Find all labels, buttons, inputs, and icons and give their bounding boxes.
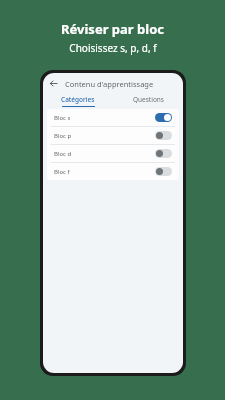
staticText: Bloc p (54, 132, 72, 140)
button[interactable]: Catégories (43, 94, 113, 107)
button[interactable]: Bloc d (47, 145, 179, 162)
button[interactable]: Retour (47, 77, 60, 90)
staticText: Questions (133, 95, 164, 104)
button[interactable]: Activé (155, 113, 172, 122)
staticText: Réviser par bloc (61, 20, 164, 38)
staticText: Catégories (61, 95, 95, 104)
staticText: Bloc s (54, 114, 71, 122)
staticText: Bloc f (54, 168, 70, 176)
staticText: Contenu d'apprentissage (65, 79, 154, 89)
staticText: Choisissez s, p, d, f (69, 41, 157, 55)
button[interactable]: Désactivé (155, 149, 172, 158)
button[interactable]: Questions (113, 94, 183, 107)
staticText: Bloc d (54, 150, 72, 158)
button[interactable]: Bloc p (47, 127, 179, 144)
button[interactable]: Bloc s (47, 109, 179, 126)
button[interactable]: Bloc f (47, 163, 179, 180)
button[interactable]: Désactivé (155, 167, 172, 176)
button[interactable]: Désactivé (155, 131, 172, 140)
